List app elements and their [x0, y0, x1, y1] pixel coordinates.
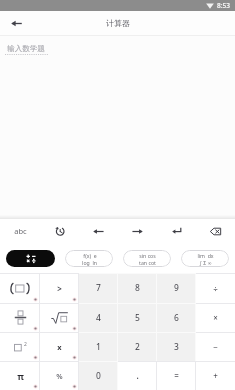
staticText: 输入数学题	[7, 44, 45, 53]
button[interactable]: x	[40, 332, 79, 361]
button[interactable]: Back	[7, 14, 25, 32]
staticText: log ln	[82, 259, 97, 266]
button[interactable]: 7	[79, 273, 118, 303]
staticText: π	[17, 370, 24, 382]
button[interactable]: 4	[79, 303, 118, 332]
button[interactable]: abc	[0, 219, 40, 243]
staticText: 9	[174, 282, 179, 294]
staticText: 7	[96, 282, 101, 294]
button[interactable]: 9	[157, 273, 196, 303]
button[interactable]: =	[157, 361, 196, 390]
button[interactable]: 6	[157, 303, 196, 332]
staticText: ÷	[213, 283, 218, 294]
staticText: 0	[96, 370, 101, 382]
button[interactable]: 2	[118, 332, 157, 361]
button[interactable]	[40, 303, 79, 332]
button[interactable]: .	[118, 361, 157, 390]
button[interactable]: 1	[79, 332, 118, 361]
staticText: 2	[24, 341, 27, 348]
button[interactable]: 8	[118, 273, 157, 303]
staticText: 5	[135, 312, 140, 324]
button[interactable]: π	[0, 361, 40, 390]
staticText: lim dx	[197, 252, 214, 259]
staticText: 3	[174, 341, 179, 353]
button[interactable]: 0	[79, 361, 118, 390]
staticText: tan cot	[139, 259, 156, 266]
staticText: 计算器	[106, 18, 130, 28]
staticText: f(x) e	[83, 252, 97, 259]
staticText: abc	[14, 226, 27, 236]
button[interactable]: lim dx	[181, 250, 229, 267]
staticText: −	[213, 341, 218, 352]
staticText: ∫ Σ ∞	[199, 259, 212, 266]
staticText: =	[174, 370, 179, 381]
button[interactable]: 2	[0, 332, 40, 361]
button[interactable]: 5	[118, 303, 157, 332]
staticText: 1	[96, 341, 101, 353]
staticText: 6	[174, 312, 179, 324]
button[interactable]: Move left	[79, 219, 118, 243]
button[interactable]	[0, 303, 40, 332]
staticText: %	[56, 371, 63, 381]
button[interactable]: Enter	[157, 219, 196, 243]
button[interactable]: sin cos	[123, 250, 171, 267]
staticText: ×	[213, 312, 218, 323]
button[interactable]: f(x) e	[65, 250, 113, 267]
staticText: .	[136, 370, 139, 381]
staticText: >	[57, 283, 62, 294]
button[interactable]: >	[40, 273, 79, 303]
staticText: x	[57, 342, 62, 352]
staticText: +	[213, 370, 218, 381]
staticText: 2	[135, 341, 140, 353]
button[interactable]: Backspace	[196, 219, 235, 243]
button[interactable]: ÷	[196, 273, 235, 303]
staticText: 4	[96, 312, 101, 324]
staticText: 8	[135, 282, 140, 294]
button[interactable]: Move right	[118, 219, 157, 243]
button[interactable]: +	[196, 361, 235, 390]
button[interactable]: %	[40, 361, 79, 390]
staticText: sin cos	[139, 252, 156, 259]
button[interactable]: ×	[196, 303, 235, 332]
button[interactable]: 3	[157, 332, 196, 361]
staticText: 8:53	[217, 1, 230, 10]
button[interactable]	[0, 273, 40, 303]
button[interactable]: History	[40, 219, 79, 243]
button[interactable]: Basic operators	[6, 250, 55, 267]
button[interactable]: −	[196, 332, 235, 361]
